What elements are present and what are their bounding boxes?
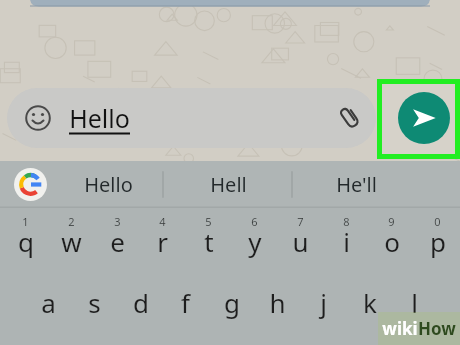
staticText: 9	[388, 214, 395, 229]
staticText: u	[292, 224, 309, 259]
staticText: d	[133, 285, 149, 320]
button[interactable]: Emoji	[25, 105, 51, 131]
button[interactable]: Attach	[338, 106, 362, 130]
staticText: f	[181, 285, 190, 320]
button[interactable]: Google	[14, 168, 47, 201]
staticText: How	[418, 317, 456, 340]
staticText: e	[110, 224, 125, 259]
staticText: r	[157, 224, 168, 259]
staticText: t	[204, 224, 214, 259]
staticText: o	[384, 224, 400, 259]
button[interactable]: p	[415, 210, 460, 272]
staticText: 7	[297, 214, 304, 229]
button[interactable]: He'll	[296, 161, 416, 208]
button[interactable]: e	[95, 210, 140, 272]
staticText: g	[224, 285, 240, 320]
button[interactable]: w	[49, 210, 94, 272]
button[interactable]: o	[369, 210, 414, 272]
staticText: wiki	[382, 317, 418, 340]
staticText: l	[411, 285, 418, 320]
button[interactable]: d	[118, 272, 163, 332]
button[interactable]: j	[301, 272, 346, 332]
button[interactable]: g	[209, 272, 254, 332]
staticText: He'll	[336, 171, 377, 198]
button[interactable]: Hello	[54, 161, 163, 208]
button[interactable]: k	[347, 272, 392, 332]
button[interactable]: u	[278, 210, 323, 272]
button[interactable]: Emoji	[7, 88, 376, 148]
button[interactable]: h	[255, 272, 300, 332]
button[interactable]: r	[140, 210, 185, 272]
button[interactable]: q	[3, 210, 48, 272]
staticText: 6	[251, 214, 258, 229]
staticText: 8	[343, 214, 350, 229]
button[interactable]: i	[324, 210, 369, 272]
button[interactable]: f	[163, 272, 208, 332]
staticText: h	[269, 285, 286, 320]
staticText: s	[88, 285, 101, 320]
staticText: Hello	[84, 171, 133, 198]
staticText: p	[430, 224, 446, 259]
staticText: j	[320, 285, 327, 320]
button[interactable]: s	[72, 272, 117, 332]
staticText: i	[343, 224, 350, 259]
staticText: 0	[434, 214, 441, 229]
button[interactable]: Hell	[167, 161, 289, 208]
staticText: 1	[22, 214, 29, 229]
button[interactable]: l	[392, 272, 437, 332]
staticText: 2	[68, 214, 75, 229]
button[interactable]: Send	[398, 92, 450, 144]
staticText: 3	[114, 214, 121, 229]
staticText: q	[18, 224, 34, 259]
staticText: Hello	[69, 101, 130, 135]
staticText: k	[363, 285, 377, 320]
staticText: Hell	[210, 171, 247, 198]
button[interactable]: t	[186, 210, 231, 272]
staticText: a	[41, 285, 56, 320]
staticText: 4	[159, 214, 166, 229]
staticText: y	[248, 224, 262, 259]
button[interactable]: y	[232, 210, 277, 272]
button[interactable]: a	[26, 272, 71, 332]
staticText: 5	[205, 214, 212, 229]
staticText: w	[61, 224, 82, 259]
